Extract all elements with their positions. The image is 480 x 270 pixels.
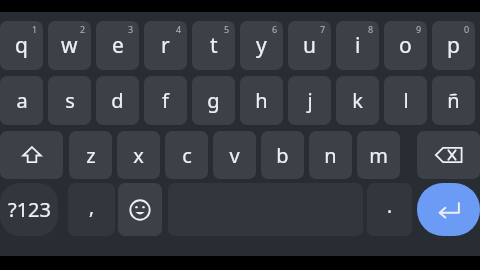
staticText: ?123 — [8, 196, 51, 223]
button[interactable]: u — [288, 21, 331, 70]
button[interactable]: c — [165, 131, 208, 179]
button[interactable]: b — [261, 131, 304, 179]
button[interactable]: s — [48, 76, 91, 125]
button[interactable]: p — [432, 21, 475, 70]
button[interactable]: e — [96, 21, 139, 70]
staticText: c — [182, 142, 192, 169]
button[interactable]: k — [336, 76, 379, 125]
staticText: s — [65, 87, 75, 114]
button[interactable]: Emoji — [118, 183, 162, 236]
button[interactable]: ñ — [432, 76, 475, 125]
staticText: h — [255, 87, 268, 114]
staticText: , — [89, 194, 95, 220]
staticText: 8 — [368, 23, 374, 35]
button[interactable]: , — [68, 183, 115, 236]
staticText: w — [61, 31, 78, 60]
button[interactable]: i — [336, 21, 379, 70]
button[interactable]: w — [48, 21, 91, 70]
staticText: j — [307, 87, 313, 114]
staticText: e — [112, 31, 124, 60]
button[interactable]: a — [0, 76, 43, 125]
button[interactable]: r — [144, 21, 187, 70]
button[interactable]: d — [96, 76, 139, 125]
staticText: 9 — [416, 23, 422, 35]
staticText: g — [207, 87, 220, 114]
button[interactable]: h — [240, 76, 283, 125]
staticText: t — [210, 31, 218, 60]
staticText: y — [256, 31, 267, 60]
staticText: 5 — [224, 23, 230, 35]
button[interactable]: t — [192, 21, 235, 70]
staticText: d — [111, 87, 124, 114]
button[interactable]: Shift — [0, 131, 63, 179]
staticText: 4 — [176, 23, 182, 35]
staticText: 7 — [320, 23, 326, 35]
button[interactable]: o — [384, 21, 427, 70]
button[interactable]: q — [0, 21, 43, 70]
staticText: k — [352, 87, 363, 114]
staticText: u — [303, 31, 316, 60]
staticText: m — [369, 142, 388, 169]
staticText: 6 — [272, 23, 278, 35]
staticText: x — [133, 142, 144, 169]
staticText: f — [162, 87, 169, 114]
button[interactable]: z — [69, 131, 112, 179]
staticText: o — [399, 31, 412, 60]
staticText: ñ — [447, 87, 460, 114]
button[interactable]: n — [309, 131, 352, 179]
button[interactable]: f — [144, 76, 187, 125]
staticText: b — [276, 142, 289, 169]
button[interactable]: g — [192, 76, 235, 125]
staticText: 1 — [32, 23, 38, 35]
button[interactable]: l — [384, 76, 427, 125]
staticText: v — [229, 142, 240, 169]
button[interactable]: ?123 — [0, 183, 58, 236]
staticText: l — [403, 87, 409, 114]
staticText: 0 — [464, 23, 470, 35]
staticText: p — [447, 31, 460, 60]
button[interactable]: Enter — [417, 183, 480, 236]
button[interactable]: . — [367, 183, 412, 236]
button[interactable]: j — [288, 76, 331, 125]
staticText: 3 — [128, 23, 134, 35]
button[interactable]: v — [213, 131, 256, 179]
staticText: r — [161, 31, 170, 60]
staticText: 2 — [80, 23, 86, 35]
button[interactable]: Backspace — [417, 131, 480, 179]
staticText: . — [387, 193, 393, 219]
staticText: i — [355, 31, 361, 60]
button[interactable]: y — [240, 21, 283, 70]
staticText: n — [324, 142, 337, 169]
staticText: z — [86, 142, 96, 169]
staticText: q — [15, 31, 28, 60]
button[interactable]: x — [117, 131, 160, 179]
staticText: a — [16, 87, 28, 114]
button[interactable]: m — [357, 131, 400, 179]
